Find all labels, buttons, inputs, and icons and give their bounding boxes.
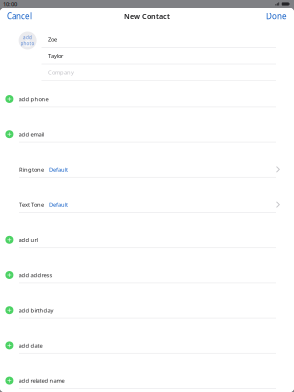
button[interactable]: Taylor [0,48,294,64]
staticText: Default [49,166,68,173]
staticText: Text Tone [19,201,44,208]
button[interactable]: Ringtone [0,162,294,197]
staticText: Company [48,68,74,76]
staticText: photo [21,41,35,47]
button[interactable]: add date [0,338,294,373]
staticText: Zoe [48,35,57,43]
staticText: add date [19,342,43,349]
staticText: add url [19,236,38,244]
staticText: Ringtone [19,166,44,173]
staticText: 10:00 [3,0,17,8]
staticText: New Contact [124,11,170,21]
button[interactable]: Zoe [0,31,294,48]
staticText: Default [49,201,68,208]
staticText: add [23,34,32,40]
staticText: add related name [19,377,65,384]
staticText: add email [19,130,44,138]
button[interactable]: add address [0,267,294,303]
staticText: Done [266,11,287,21]
button[interactable]: add email [0,127,294,162]
button[interactable]: Done [260,12,294,21]
button[interactable]: Cancel [0,12,38,21]
button[interactable]: Add photo [19,31,37,49]
button[interactable]: add related name [0,373,294,392]
button[interactable]: Company [0,64,294,81]
button[interactable]: Text Tone [0,197,294,232]
staticText: add phone [19,95,49,103]
staticText: Taylor [48,52,63,60]
staticText: Cancel [7,11,32,21]
staticText: add address [19,271,53,279]
button[interactable]: add birthday [0,303,294,338]
staticText: add birthday [19,306,54,314]
button[interactable]: add url [0,232,294,267]
button[interactable]: add phone [0,91,294,127]
